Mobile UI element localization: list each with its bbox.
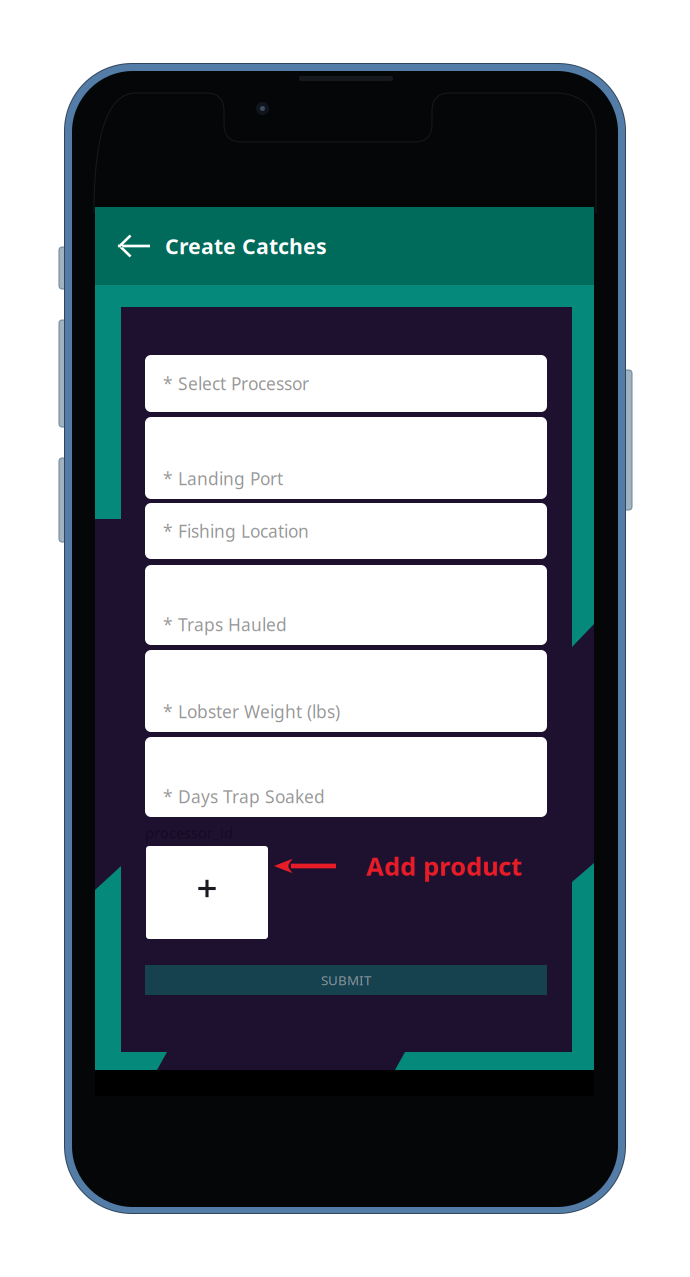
staticText: * Select Processor — [163, 372, 309, 395]
button[interactable]: * Days Trap Soaked — [145, 737, 547, 817]
staticText: Add product — [366, 849, 522, 883]
staticText: * Landing Port — [163, 467, 283, 490]
button[interactable]: * Select Processor — [145, 355, 547, 412]
button[interactable]: * Fishing Location — [145, 503, 547, 559]
button[interactable]: * Lobster Weight (lbs) — [145, 650, 547, 732]
button[interactable]: Add product — [146, 846, 268, 939]
staticText: processor_id — [145, 823, 233, 842]
staticText: SUBMIT — [321, 971, 371, 989]
staticText: * Days Trap Soaked — [163, 785, 325, 808]
button[interactable]: Back — [117, 207, 165, 285]
staticText: Create Catches — [165, 232, 327, 260]
button[interactable]: * Landing Port — [145, 417, 547, 499]
button[interactable]: * Traps Hauled — [145, 565, 547, 645]
staticText: * Fishing Location — [163, 519, 309, 542]
staticText: * Lobster Weight (lbs) — [163, 700, 340, 723]
button[interactable]: SUBMIT — [145, 965, 547, 995]
staticText: * Traps Hauled — [163, 613, 287, 636]
